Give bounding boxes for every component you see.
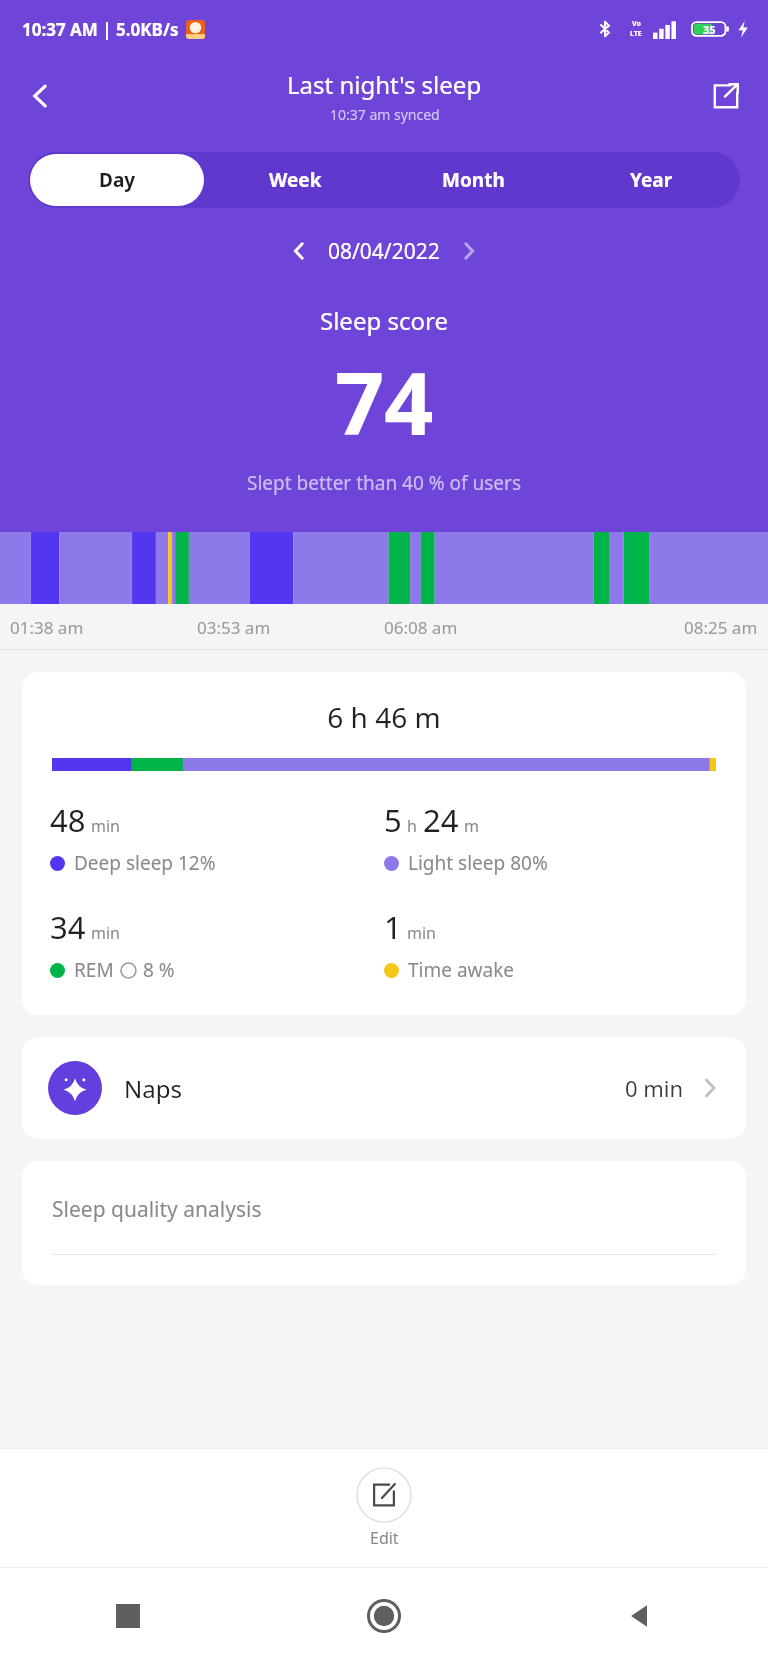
button[interactable]: 34	[50, 906, 384, 983]
button[interactable]: Sleep quality analysis	[22, 1161, 746, 1285]
button[interactable]: Previous day	[276, 228, 322, 274]
button[interactable]: 1	[384, 906, 718, 983]
staticText: Day	[99, 167, 136, 193]
button[interactable]: Month	[386, 154, 560, 206]
staticText: 03:53 am	[197, 616, 271, 639]
button[interactable]: Year	[564, 154, 738, 206]
button[interactable]: Home	[256, 1568, 512, 1664]
staticText: 24	[423, 799, 459, 841]
staticText: 74	[335, 343, 434, 460]
button[interactable]: Week	[208, 154, 382, 206]
staticText: Sleep quality analysis	[52, 1195, 262, 1224]
staticText: min	[91, 815, 120, 837]
button[interactable]: Day	[30, 154, 204, 206]
staticText: 6 h 46 m	[22, 698, 746, 736]
button[interactable]: Edit	[336, 1463, 432, 1553]
staticText: 35	[703, 22, 716, 37]
button[interactable]: Back	[12, 67, 70, 125]
staticText: m	[464, 815, 479, 837]
staticText: Deep sleep 12%	[74, 850, 216, 876]
staticText: Slept better than 40 % of users	[247, 470, 521, 496]
staticText: 1	[384, 906, 402, 948]
staticText: 48	[50, 799, 86, 841]
staticText: Light sleep 80%	[408, 850, 548, 876]
staticText: min	[91, 922, 120, 944]
staticText: Vo	[632, 19, 641, 29]
staticText: Last night's sleep	[287, 68, 482, 101]
staticText: Edit	[370, 1527, 399, 1549]
staticText: 08/04/2022	[328, 237, 440, 266]
staticText: Time awake	[408, 957, 515, 983]
button[interactable]: Recent apps	[0, 1568, 256, 1664]
staticText: Sleep score	[320, 304, 448, 337]
button[interactable]: 48	[50, 799, 384, 876]
button[interactable]: 5	[384, 799, 718, 876]
staticText: Week	[269, 167, 322, 193]
staticText: 8 %	[143, 957, 175, 983]
button[interactable]: Next day	[446, 228, 492, 274]
staticText: LTE	[630, 29, 642, 39]
staticText: Year	[630, 167, 673, 193]
staticText: Month	[442, 167, 505, 193]
staticText: h	[407, 815, 417, 837]
staticText: 34	[50, 906, 86, 948]
staticText: 0 min	[625, 1073, 684, 1103]
staticText: 10:37 AM | 5.0KB/s	[22, 18, 179, 41]
button[interactable]: Naps	[22, 1037, 746, 1139]
staticText: 10:37 am synced	[330, 105, 440, 124]
button[interactable]: Back	[512, 1568, 768, 1664]
staticText: REM	[74, 957, 114, 983]
staticText: 08:25 am	[684, 616, 758, 639]
staticText: Naps	[124, 1072, 182, 1105]
staticText: min	[407, 922, 436, 944]
button[interactable]: Share	[698, 68, 754, 124]
staticText: 5	[384, 799, 402, 841]
staticText: 01:38 am	[10, 616, 84, 639]
staticText: 06:08 am	[384, 616, 458, 639]
